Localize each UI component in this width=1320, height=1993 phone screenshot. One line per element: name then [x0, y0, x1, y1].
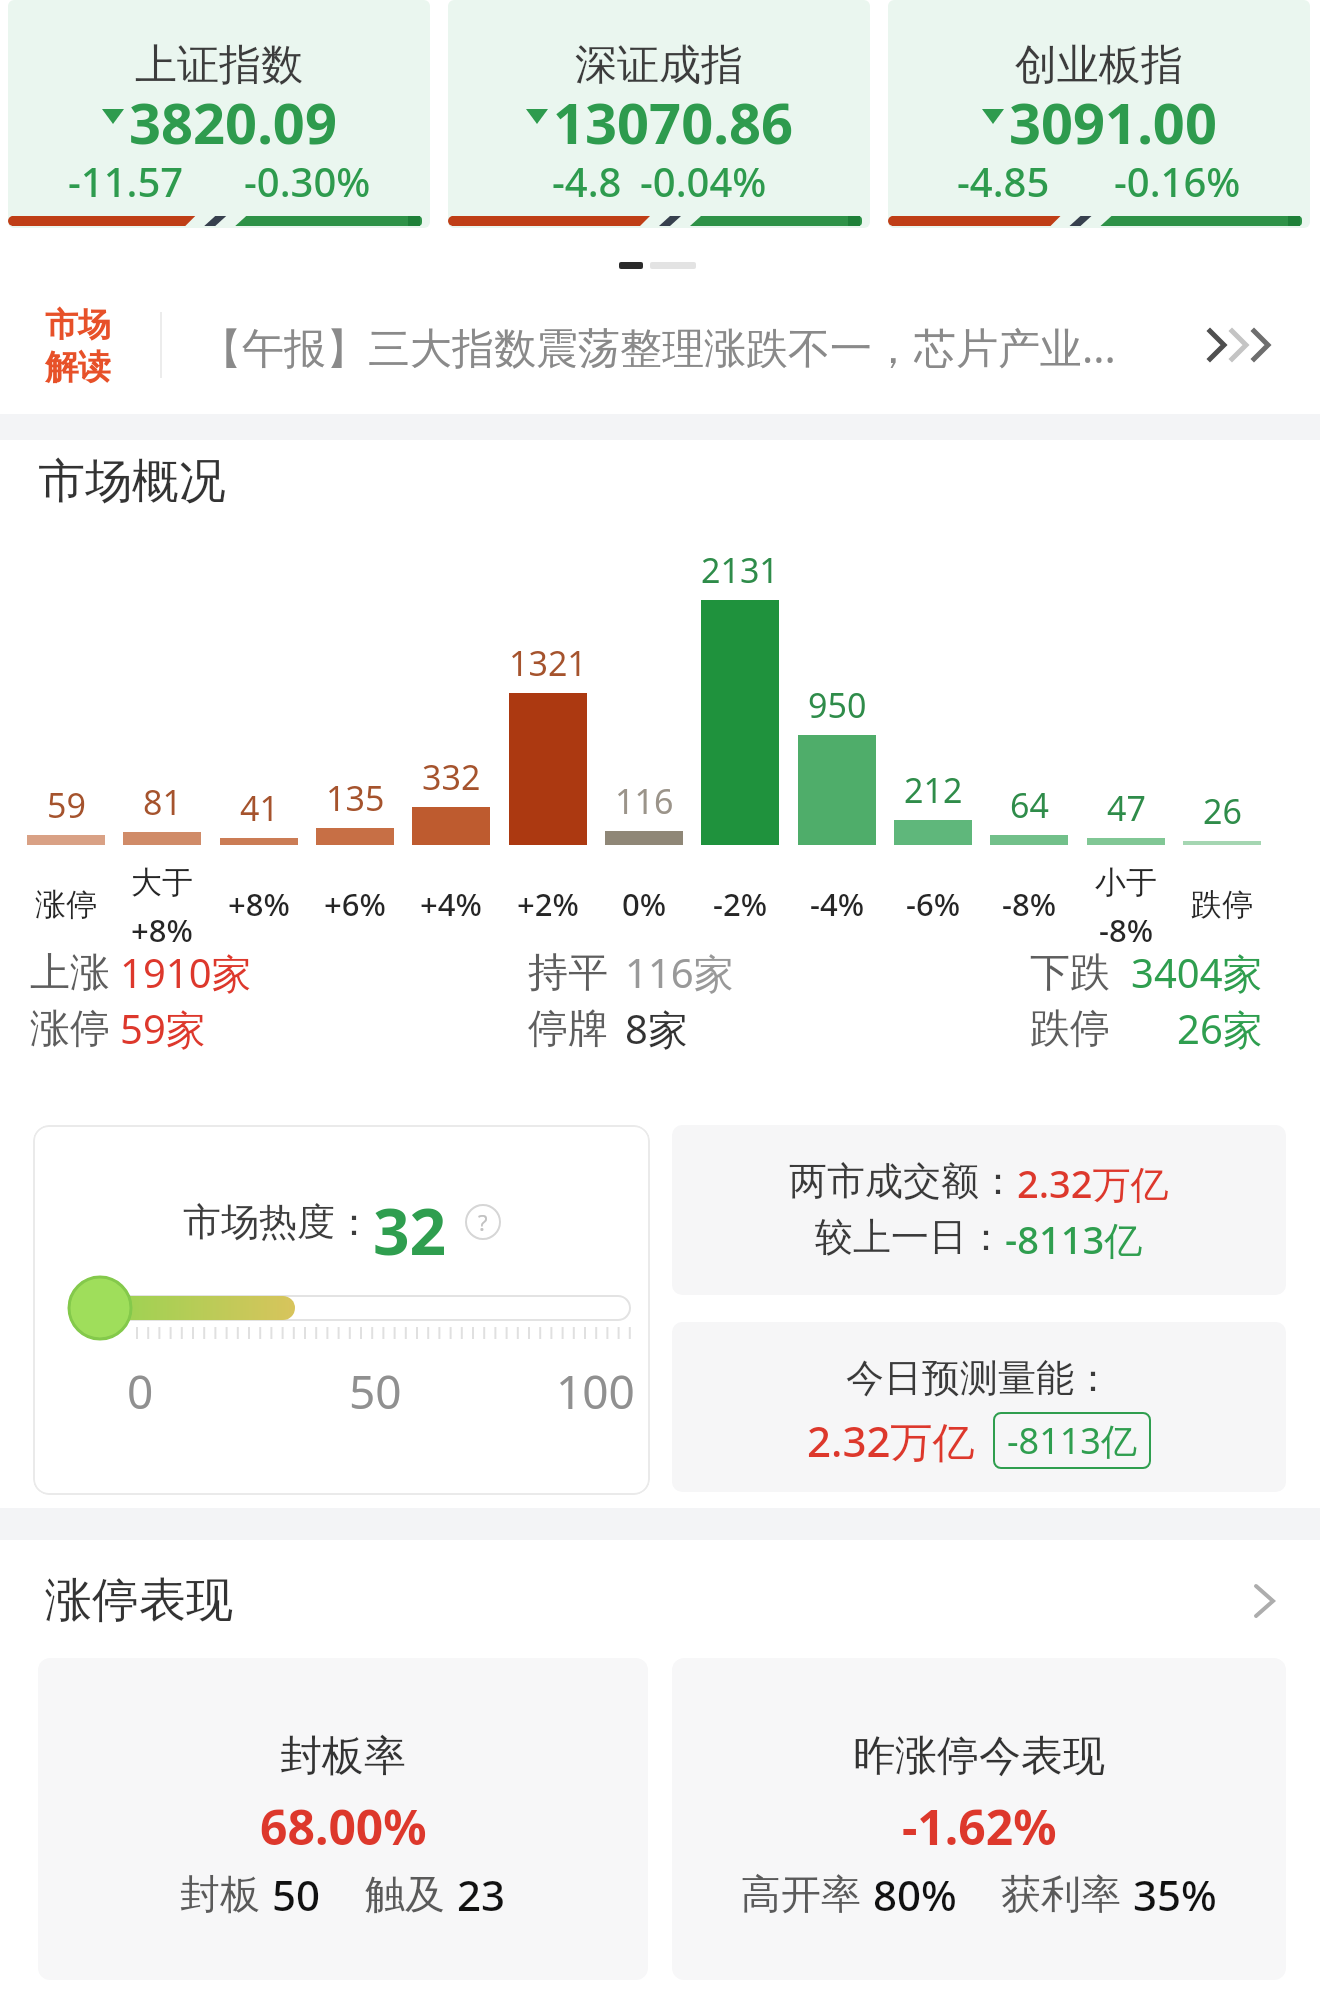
staticText: 触及 [365, 1869, 445, 1919]
staticText: -11.57 [68, 154, 184, 204]
staticText: 3091.00 [1009, 84, 1217, 148]
staticText: 市场 [45, 304, 111, 346]
staticText: 3404家 [1131, 945, 1263, 1000]
staticText: 跌停 [1030, 1003, 1110, 1053]
staticText: 13070.86 [553, 84, 793, 148]
staticText: 封板 [180, 1869, 260, 1919]
staticText: 116 [615, 778, 674, 824]
staticText: 23 [457, 1866, 506, 1922]
staticText: 【午报】三大指数震荡整理涨跌不一，芯片产业... [200, 318, 1116, 375]
staticText: -8113亿 [1005, 1213, 1143, 1265]
staticText: 32 [373, 1187, 447, 1257]
staticText: 116家 [625, 945, 734, 1000]
staticText: -8% [1099, 909, 1154, 951]
staticText: 26家 [1177, 1001, 1263, 1056]
staticText: 64 [1010, 782, 1049, 828]
staticText: 深证成指 [575, 39, 743, 92]
staticText: 获利率 [1001, 1869, 1121, 1919]
button[interactable]: 今日预测量能： [672, 1322, 1286, 1492]
button[interactable]: 昨涨停今表现 [672, 1658, 1286, 1980]
staticText: -2% [713, 883, 768, 925]
staticText: 100 [556, 1360, 635, 1410]
staticText: 59家 [120, 1001, 206, 1056]
staticText: 8家 [625, 1001, 688, 1056]
staticText: ? [478, 1207, 488, 1237]
staticText: -8113亿 [1007, 1416, 1137, 1465]
staticText: 59 [47, 782, 86, 828]
staticText: 高开率 [741, 1869, 861, 1919]
staticText: 封板率 [280, 1730, 406, 1783]
staticText: +6% [324, 883, 386, 925]
staticText: +2% [517, 883, 579, 925]
staticText: 26 [1203, 788, 1242, 834]
staticText: 212 [904, 767, 963, 813]
staticText: 68.00% [260, 1794, 427, 1852]
staticText: 下跌 [1030, 947, 1110, 997]
staticText: 2.32万亿 [1017, 1157, 1169, 1209]
staticText: -8% [1002, 883, 1057, 925]
staticText: -4.85 [957, 154, 1050, 204]
button[interactable]: 市场热度： [33, 1125, 650, 1495]
staticText: 上证指数 [135, 39, 303, 92]
staticText: 上涨 [30, 947, 110, 997]
staticText: 解读 [45, 346, 111, 388]
staticText: 0% [622, 883, 667, 925]
staticText: 较上一日： [815, 1213, 1005, 1261]
staticText: 81 [143, 779, 182, 825]
staticText: 两市成交额： [789, 1157, 1017, 1205]
staticText: 41 [240, 785, 279, 831]
staticText: +8% [228, 883, 290, 925]
staticText: +4% [420, 883, 482, 925]
button[interactable]: 两市成交额： [672, 1125, 1286, 1295]
staticText: 3820.09 [129, 84, 337, 148]
staticText: 80% [873, 1866, 957, 1922]
staticText: 0 [127, 1360, 154, 1410]
staticText: 昨涨停今表现 [853, 1730, 1105, 1783]
staticText: +8% [131, 909, 193, 951]
button[interactable]: 创业板指 [888, 0, 1310, 228]
staticText: 2131 [701, 547, 779, 593]
staticText: 小于 [1095, 863, 1157, 902]
staticText: 今日预测量能： [846, 1354, 1112, 1402]
staticText: -4.8 [552, 154, 622, 204]
staticText: 涨停表现 [45, 1571, 233, 1630]
staticText: 50 [349, 1360, 402, 1410]
staticText: -0.30% [244, 154, 371, 204]
button[interactable]: 市场 [0, 296, 1320, 396]
button[interactable]: 封板率 [38, 1658, 648, 1980]
staticText: 47 [1107, 785, 1146, 831]
staticText: 停牌 [528, 1003, 608, 1053]
button[interactable]: 涨停表现 [0, 1560, 1320, 1640]
staticText: 持平 [528, 947, 608, 997]
staticText: 950 [808, 682, 867, 728]
staticText: 1321 [509, 640, 587, 686]
staticText: -1.62% [902, 1794, 1057, 1852]
staticText: 涨停 [35, 885, 97, 924]
staticText: 市场热度： [183, 1198, 373, 1246]
staticText: 市场概况 [38, 452, 226, 511]
staticText: 1910家 [120, 945, 252, 1000]
staticText: -4% [810, 883, 865, 925]
staticText: 涨停 [30, 1003, 110, 1053]
staticText: 创业板指 [1015, 39, 1183, 92]
staticText: -0.16% [1114, 154, 1241, 204]
staticText: 大于 [131, 863, 193, 902]
button[interactable]: 上证指数 [8, 0, 430, 228]
staticText: 2.32万亿 [807, 1412, 975, 1469]
staticText: 135 [326, 775, 385, 821]
staticText: 跌停 [1191, 885, 1253, 924]
button[interactable]: 深证成指 [448, 0, 870, 228]
staticText: -0.04% [640, 154, 767, 204]
staticText: 50 [272, 1866, 321, 1922]
staticText: -6% [906, 883, 961, 925]
staticText: 332 [422, 754, 481, 800]
staticText: 35% [1133, 1866, 1217, 1922]
